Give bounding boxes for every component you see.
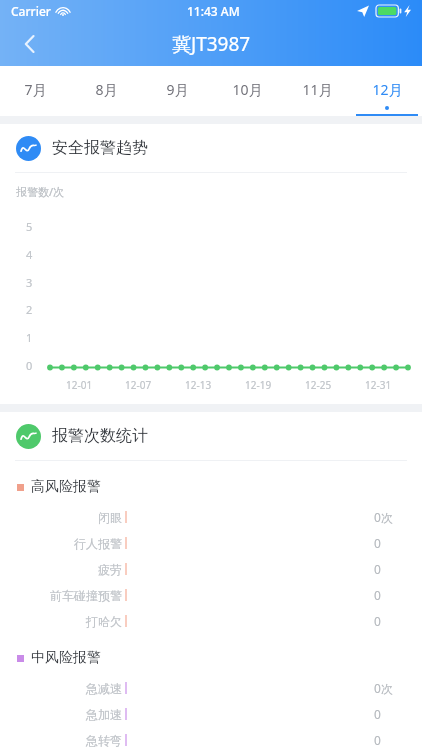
staticText: 0 [374, 535, 422, 551]
staticText: 8月 [95, 80, 118, 99]
staticText: 1 [26, 330, 33, 345]
button[interactable]: 闭眼 [0, 504, 422, 530]
button[interactable]: 行人报警 [0, 530, 422, 556]
staticText: 前车碰撞预警 [0, 588, 122, 603]
staticText: 高风险报警 [31, 478, 101, 496]
staticText: 0 [374, 587, 422, 603]
staticText: 3 [26, 275, 33, 290]
staticText: 4 [26, 247, 33, 262]
button[interactable]: 12月 [352, 66, 422, 116]
staticText: 7月 [24, 80, 47, 99]
staticText: 12-07 [125, 378, 152, 392]
staticText: 报警数/次 [16, 184, 65, 199]
staticText: 报警次数统计 [52, 426, 148, 446]
button[interactable]: 11月 [282, 66, 352, 116]
button[interactable]: 急转弯 [0, 727, 422, 750]
button[interactable]: 急加速 [0, 701, 422, 727]
staticText: 2 [26, 302, 33, 317]
staticText: 10月 [232, 80, 263, 99]
staticText: 0 [26, 358, 33, 373]
staticText: 5 [26, 219, 33, 234]
staticText: 12-01 [66, 378, 93, 392]
button[interactable]: 10月 [212, 66, 282, 116]
staticText: 急减速 [0, 681, 122, 696]
staticText: 0 [374, 613, 422, 629]
button[interactable]: 7月 [0, 66, 71, 116]
staticText: 闭眼 [0, 510, 122, 525]
staticText: 冀JT3987 [172, 31, 251, 57]
staticText: 安全报警趋势 [52, 138, 148, 158]
button[interactable]: 前车碰撞预警 [0, 582, 422, 608]
staticText: 0次 [374, 680, 422, 696]
staticText: 11:43 AM [187, 3, 240, 19]
button[interactable]: 打哈欠 [0, 608, 422, 634]
staticText: 12-25 [305, 378, 332, 392]
staticText: 12-31 [365, 378, 392, 392]
button[interactable]: 疲劳 [0, 556, 422, 582]
button[interactable]: 急减速 [0, 675, 422, 701]
staticText: 急转弯 [0, 733, 122, 748]
staticText: 0 [374, 561, 422, 577]
button[interactable]: Back [8, 22, 52, 66]
staticText: Carrier [11, 3, 51, 19]
staticText: 急加速 [0, 707, 122, 722]
staticText: 12-19 [245, 378, 272, 392]
staticText: 0 [374, 732, 422, 748]
staticText: 12月 [372, 80, 403, 99]
staticText: 9月 [166, 80, 189, 99]
staticText: 打哈欠 [0, 614, 122, 629]
staticText: 0 [374, 706, 422, 722]
staticText: 0次 [374, 509, 422, 525]
staticText: 中风险报警 [31, 649, 101, 667]
staticText: 11月 [302, 80, 333, 99]
button[interactable]: 9月 [142, 66, 212, 116]
button[interactable]: 8月 [71, 66, 142, 116]
staticText: 12-13 [185, 378, 212, 392]
staticText: 行人报警 [0, 536, 122, 551]
staticText: 疲劳 [0, 562, 122, 577]
